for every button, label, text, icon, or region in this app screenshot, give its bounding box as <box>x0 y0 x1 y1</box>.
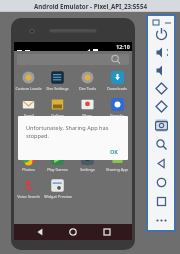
button[interactable]: Minimize <box>163 17 171 25</box>
button[interactable]: Play Games <box>43 149 72 176</box>
staticText: Downloads <box>107 86 127 91</box>
button[interactable]: Mail <box>14 122 43 149</box>
button[interactable]: Home <box>148 173 174 192</box>
button[interactable]: Music <box>72 122 102 149</box>
staticText: Play Games <box>47 167 68 172</box>
button[interactable]: Custom Locale <box>14 68 43 95</box>
staticText: Gallery <box>51 113 64 118</box>
button[interactable]: Downloads <box>102 68 132 95</box>
staticText: Dev Tools <box>79 86 96 91</box>
staticText: Sharing App <box>106 167 128 172</box>
staticText: Unfortunately, Sharing App has stopped. <box>26 124 123 140</box>
button[interactable]: Rotate right <box>148 97 174 116</box>
button[interactable]: Volume up <box>148 43 174 61</box>
button[interactable]: Messaging <box>43 122 72 149</box>
button[interactable]: Widget Preview <box>43 176 72 203</box>
button[interactable]: More <box>148 211 174 230</box>
button[interactable]: Phone <box>102 122 132 149</box>
button[interactable]: Dev Tools <box>72 68 102 95</box>
staticText: Android Emulator - Pixel_API_23:5554 <box>34 2 147 10</box>
staticText: Widget Preview <box>44 194 72 199</box>
button[interactable]: Email <box>14 95 43 122</box>
staticText: Dev Settings <box>46 86 69 91</box>
button[interactable]: Zoom <box>148 135 174 154</box>
button[interactable]: Dev Settings <box>43 68 72 95</box>
button[interactable]: OK <box>105 146 123 157</box>
button[interactable]: Volume down <box>148 61 174 79</box>
button[interactable]: Back <box>148 154 174 173</box>
button[interactable]: Home <box>65 224 81 240</box>
button[interactable]: Voice Search <box>14 176 43 203</box>
button[interactable]: Maps <box>72 95 102 122</box>
staticText: Custom Locale <box>15 86 42 91</box>
staticText: Settings <box>80 167 95 172</box>
staticText: Google+ <box>110 113 125 118</box>
button[interactable]: Power <box>148 25 174 43</box>
staticText: Voice Search <box>17 194 40 199</box>
button[interactable]: Search apps <box>17 54 129 65</box>
button[interactable]: Sharing App <box>102 149 132 176</box>
button[interactable]: Overview <box>148 192 174 211</box>
button[interactable]: Close <box>151 17 159 25</box>
staticText: Photos <box>22 167 35 172</box>
button[interactable]: Back <box>32 224 48 240</box>
button[interactable]: Recents <box>99 224 115 240</box>
button[interactable]: Gallery <box>43 95 72 122</box>
staticText: OK <box>110 148 118 155</box>
staticText: Maps <box>82 113 92 118</box>
button[interactable]: Settings <box>72 149 102 176</box>
staticText: Email <box>24 113 34 118</box>
button[interactable]: Rotate left <box>148 79 174 97</box>
staticText: 12:10 <box>116 43 130 50</box>
button[interactable]: Google+ <box>102 95 132 122</box>
button[interactable]: Photos <box>14 149 43 176</box>
button[interactable]: Camera <box>148 116 174 135</box>
